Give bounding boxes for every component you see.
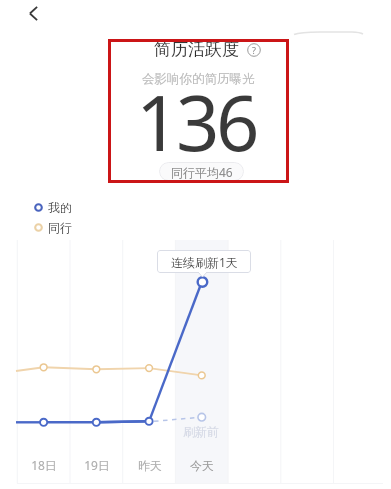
staticText: 今天 [190,458,214,473]
staticText: 同行 [48,220,72,235]
staticText: 同行平均46 [171,164,233,180]
staticText: 19日 [84,457,110,473]
button[interactable]: 同行平均46 [159,162,244,181]
button[interactable]: 同行 [34,220,72,235]
staticText: 136 [136,70,257,154]
button[interactable]: 连续刷新1天 [157,250,251,273]
button[interactable]: 我的 [34,200,72,215]
staticText: 昨天 [138,458,162,473]
staticText: ? [252,44,256,56]
staticText: 连续刷新1天 [171,254,238,270]
staticText: 刷新前 [183,424,219,439]
button[interactable]: Back [18,0,48,28]
staticText: 会影响你的简历曝光 [142,71,255,87]
staticText: 简历活跃度 [154,39,239,60]
staticText: 我的 [48,200,72,215]
button[interactable]: 简历活跃度 [47,38,367,60]
staticText: 18日 [31,457,57,473]
